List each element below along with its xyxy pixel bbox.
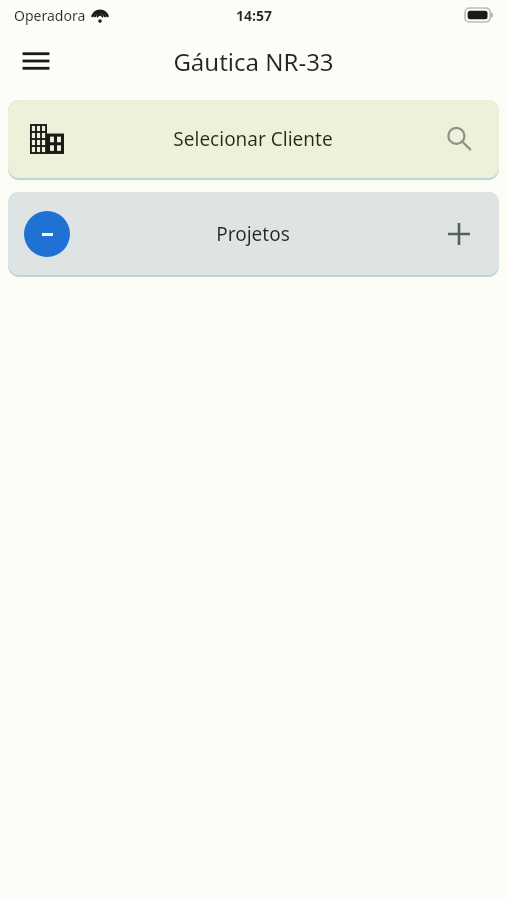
button[interactable]: Recolher projetos (24, 211, 70, 257)
button[interactable]: Recolher projetos (8, 192, 499, 277)
button[interactable]: Selecionar Cliente (8, 100, 499, 180)
staticText: 14:57 (236, 6, 272, 25)
staticText: Projetos (216, 221, 290, 247)
staticText: Gáutica NR-33 (173, 45, 334, 78)
staticText: Operadora (14, 6, 86, 25)
button[interactable]: Menu (12, 37, 60, 85)
staticText: Selecionar Cliente (173, 126, 333, 152)
button[interactable]: Adicionar projeto (419, 192, 499, 275)
